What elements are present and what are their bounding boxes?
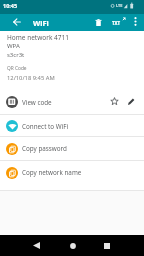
button[interactable] bbox=[9, 14, 25, 30]
button[interactable]: View code bbox=[0, 90, 144, 114]
button[interactable] bbox=[129, 15, 142, 28]
button[interactable] bbox=[65, 238, 80, 253]
staticText: WPA bbox=[7, 42, 20, 50]
staticText: 10:45 bbox=[3, 2, 18, 9]
button[interactable] bbox=[110, 97, 119, 106]
staticText: LTE bbox=[116, 3, 123, 8]
staticText: View code bbox=[22, 98, 52, 107]
button[interactable]: Copy network name bbox=[0, 161, 144, 184]
staticText: Connect to WiFi bbox=[22, 122, 69, 131]
button[interactable]: Copy password bbox=[0, 137, 144, 160]
staticText: 12/10/18 9:45 AM bbox=[7, 74, 55, 82]
staticText: s3cr3t bbox=[7, 51, 25, 59]
staticText: Copy password bbox=[22, 144, 67, 153]
button[interactable] bbox=[127, 97, 136, 106]
staticText: TXT bbox=[112, 20, 121, 26]
button[interactable] bbox=[99, 238, 114, 253]
staticText: Home network 4711 bbox=[7, 33, 69, 42]
button[interactable] bbox=[91, 15, 105, 29]
button[interactable]: TXT bbox=[108, 15, 124, 31]
button[interactable]: Connect to WiFi bbox=[0, 115, 144, 137]
staticText: Copy network name bbox=[22, 168, 82, 177]
button[interactable] bbox=[29, 238, 44, 253]
staticText: QR Code bbox=[7, 65, 27, 72]
staticText: WiFi bbox=[33, 18, 49, 28]
